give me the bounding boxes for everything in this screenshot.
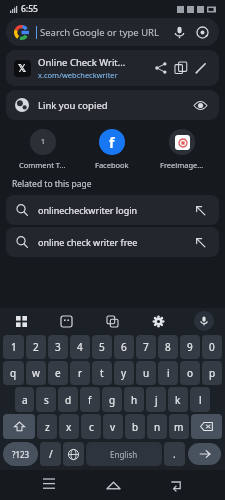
button[interactable]: Translate xyxy=(102,311,122,331)
button[interactable]: 0 xyxy=(202,335,222,359)
button[interactable]: g xyxy=(102,387,122,412)
button[interactable]: 4 xyxy=(70,335,90,359)
button[interactable]: ?123 xyxy=(3,442,38,466)
button[interactable]: q xyxy=(3,361,24,385)
staticText: / xyxy=(49,447,53,461)
button[interactable]: Stickers xyxy=(56,311,76,331)
staticText: b xyxy=(132,420,139,434)
staticText: j xyxy=(155,393,158,407)
staticText: w xyxy=(32,366,40,380)
button[interactable]: b xyxy=(125,414,145,439)
staticText: 4 xyxy=(77,340,83,354)
button[interactable]: k xyxy=(168,387,188,412)
staticText: n xyxy=(154,420,161,434)
button[interactable]: English xyxy=(86,442,162,466)
button[interactable]: i xyxy=(158,361,178,385)
button[interactable]: y xyxy=(114,361,134,385)
staticText: q xyxy=(10,366,17,380)
button[interactable]: l xyxy=(190,387,210,412)
button[interactable]: w xyxy=(26,361,46,385)
button[interactable]: . xyxy=(164,442,185,466)
button[interactable]: n xyxy=(147,414,167,439)
button[interactable]: Home xyxy=(98,470,128,500)
button[interactable]: Back xyxy=(161,470,191,500)
staticText: 3 xyxy=(55,340,61,354)
button[interactable]: Voice input xyxy=(194,311,214,331)
button[interactable]: f xyxy=(80,387,100,412)
staticText: 0 xyxy=(209,340,215,354)
staticText: Online Check Writ… xyxy=(38,56,126,69)
button[interactable]: Freeimage… xyxy=(147,127,217,172)
button[interactable]: Link you copied xyxy=(6,90,219,120)
staticText: onlinecheckwriter login xyxy=(38,204,191,216)
button[interactable]: m xyxy=(169,414,189,439)
button[interactable]: Voice search xyxy=(170,23,188,41)
staticText: 2 xyxy=(33,340,39,354)
button[interactable]: 7 xyxy=(136,335,156,359)
button[interactable]: Go xyxy=(188,443,221,465)
staticText: x xyxy=(66,420,72,434)
button[interactable]: a xyxy=(15,387,34,412)
button[interactable]: v xyxy=(103,414,123,439)
button[interactable]: 8 xyxy=(158,335,178,359)
staticText: Search Google or type URL xyxy=(40,26,170,39)
button[interactable]: c xyxy=(81,414,101,439)
button[interactable]: h xyxy=(124,387,144,412)
button[interactable]: 9 xyxy=(180,335,200,359)
staticText: Link you copied xyxy=(38,99,190,112)
staticText: k xyxy=(175,393,181,407)
button[interactable]: o xyxy=(180,361,200,385)
staticText: z xyxy=(45,420,50,434)
button[interactable]: 3 xyxy=(48,335,68,359)
button[interactable]: t xyxy=(92,361,112,385)
button[interactable]: 2 xyxy=(26,335,46,359)
button[interactable]: Copy xyxy=(171,58,191,78)
button[interactable]: online check writer free xyxy=(6,227,219,257)
button[interactable]: u xyxy=(136,361,156,385)
button[interactable]: x xyxy=(59,414,79,439)
staticText: Freeimage… xyxy=(160,160,204,170)
button[interactable]: j xyxy=(146,387,166,412)
staticText: y xyxy=(121,366,127,380)
button[interactable]: 1 xyxy=(3,335,24,359)
button[interactable]: Recents xyxy=(34,470,64,500)
staticText: Related to this page xyxy=(12,178,92,190)
button[interactable]: Shift xyxy=(3,414,35,439)
button[interactable]: Search Google or type URL xyxy=(6,18,219,46)
staticText: e xyxy=(55,366,61,380)
staticText: c xyxy=(89,420,94,434)
button[interactable]: / xyxy=(40,442,61,466)
button[interactable]: r xyxy=(70,361,90,385)
button[interactable]: Google Lens xyxy=(193,23,211,41)
button[interactable]: onlinecheckwriter login xyxy=(6,195,219,225)
button[interactable]: 6 xyxy=(114,335,134,359)
button[interactable]: Show link xyxy=(190,95,210,115)
staticText: . xyxy=(173,447,176,461)
button[interactable]: p xyxy=(202,361,222,385)
button[interactable]: f xyxy=(77,127,147,172)
staticText: u xyxy=(143,366,150,380)
button[interactable]: 1 xyxy=(8,127,77,172)
button[interactable]: d xyxy=(58,387,78,412)
staticText: 6:55 xyxy=(21,3,38,15)
staticText: v xyxy=(110,420,116,434)
button[interactable]: Insert query xyxy=(191,201,209,219)
button[interactable]: Change language xyxy=(63,442,84,466)
button[interactable]: e xyxy=(48,361,68,385)
staticText: English xyxy=(110,449,138,460)
button[interactable]: Settings xyxy=(148,311,168,331)
button[interactable]: Backspace xyxy=(191,414,222,439)
button[interactable]: Apps xyxy=(11,311,31,331)
staticText: p xyxy=(209,366,216,380)
button[interactable]: 5 xyxy=(92,335,112,359)
staticText: r xyxy=(78,366,83,380)
button[interactable]: s xyxy=(36,387,56,412)
button[interactable]: 𝕏 xyxy=(6,50,219,86)
staticText: i xyxy=(167,366,170,380)
button[interactable]: Insert query xyxy=(191,233,209,251)
staticText: x.com/webcheckwriter xyxy=(38,70,118,80)
button[interactable]: Share xyxy=(151,58,171,78)
button[interactable]: z xyxy=(37,414,57,439)
staticText: o xyxy=(187,366,194,380)
button[interactable]: Edit xyxy=(191,58,211,78)
